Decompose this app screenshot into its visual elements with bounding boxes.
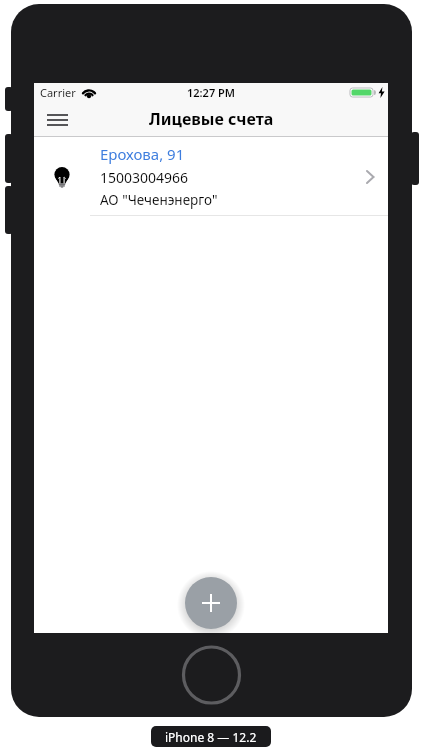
staticText: iPhone 8 — 12.2 — [165, 729, 257, 745]
staticText: Carrier — [40, 85, 76, 100]
button[interactable]: Ерохова, 91 — [34, 137, 388, 215]
button[interactable] — [185, 577, 237, 629]
staticText: АО "Чеченэнерго" — [100, 191, 218, 209]
button[interactable] — [47, 114, 68, 126]
staticText: 15003004966 — [100, 168, 189, 187]
staticText: Ерохова, 91 — [100, 144, 185, 164]
staticText: 12:27 PM — [187, 85, 236, 100]
staticText: Лицевые счета — [149, 108, 274, 130]
